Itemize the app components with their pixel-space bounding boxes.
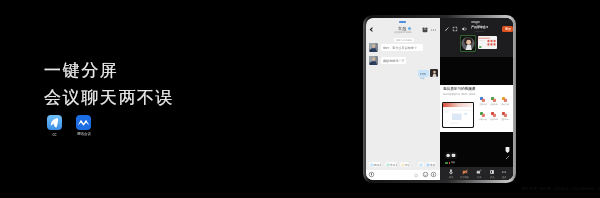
staticText: 已读 [420, 77, 425, 80]
staticText: 产品评审会 ▾ [471, 25, 488, 29]
staticText: 腾讯会议 [77, 132, 91, 136]
button[interactable]: 购买咨询 [369, 162, 381, 167]
staticText: 离开 [505, 27, 511, 31]
button[interactable]: 演示文稿 [500, 97, 509, 105]
button[interactable]: 客服小C为您服务 [394, 38, 414, 42]
button[interactable]: 更多 [431, 28, 436, 32]
button[interactable]: 标注 [505, 155, 510, 160]
button[interactable]: CC [47, 115, 62, 137]
button[interactable]: 返回 [368, 26, 375, 33]
button[interactable]: 腾讯会议 [76, 115, 91, 136]
staticText: CC [52, 132, 57, 137]
staticText: 共享 [477, 176, 482, 179]
button[interactable]: 开启视频 [459, 169, 470, 179]
staticText: 客服 [398, 26, 407, 31]
staticText: 在线客服为您服务 [394, 31, 412, 34]
staticText: 客服小C为您服务 [396, 39, 412, 42]
staticText: 会议聊天两不误 [44, 87, 175, 108]
button[interactable]: 群聊 [422, 27, 428, 33]
staticText: 高品质学习的视频课 [443, 87, 476, 92]
button[interactable]: 点赞 [414, 173, 418, 177]
button[interactable]: 麻烦您稍等一下 [381, 57, 406, 64]
button[interactable]: 共享内容预览 [478, 36, 497, 49]
staticText: 成员 [490, 176, 495, 179]
button[interactable]: 扬声器 [461, 26, 467, 32]
button[interactable]: 售后咨询 [385, 162, 397, 167]
button[interactable]: 更多 [425, 162, 436, 167]
button[interactable]: 您好，有什么可以帮您？ [381, 44, 423, 51]
button[interactable]: 好的 [418, 70, 429, 77]
staticText: 麻烦您稍等一下 [383, 59, 405, 63]
staticText: 开启视频 [460, 176, 469, 179]
button[interactable]: 更多应用 [500, 112, 509, 120]
button[interactable]: 白板 [505, 147, 510, 153]
staticText: 弹幕 [451, 161, 455, 164]
button[interactable]: 表情 [423, 172, 428, 177]
button[interactable]: 更多 [500, 169, 508, 179]
staticText: 投诉 [405, 163, 409, 166]
staticText: 00:32:18 [475, 30, 484, 33]
button[interactable]: 在线问卷 [489, 112, 498, 120]
staticText: 精选优质课程内容 · 随时学 · 随地学 [443, 93, 476, 96]
button[interactable]: 离开 [502, 26, 513, 32]
button[interactable]: 媒体控制 [445, 152, 457, 159]
staticText: 售后咨询 [390, 163, 397, 166]
staticText: 文档协作 [479, 103, 487, 105]
staticText: 静音 [449, 176, 454, 179]
button[interactable]: 更多功能 [431, 172, 436, 177]
staticText: 在线表格 [490, 103, 498, 105]
button[interactable]: 共享 [475, 169, 483, 179]
staticText: 更多 [502, 176, 507, 179]
button[interactable]: 布局 [452, 26, 458, 32]
staticText: 在线问卷 [490, 118, 498, 120]
staticText: 思维导图 [479, 118, 487, 120]
button[interactable]: 静音 [447, 169, 455, 179]
button[interactable] [418, 162, 424, 167]
button[interactable]: 成员 [488, 169, 496, 179]
staticText: 好的 [420, 72, 427, 76]
staticText: 更多 [430, 163, 436, 166]
staticText: 更多应用 [501, 118, 509, 120]
staticText: 演示文稿 [501, 103, 509, 105]
button[interactable]: 投诉 [400, 162, 409, 167]
staticText: 图片来源厂商官网，仅供参考，请以实物为准，画面内容为模拟示意 [522, 187, 600, 192]
button[interactable]: 思维导图 [478, 112, 487, 120]
button[interactable]: 收起 [444, 26, 450, 32]
staticText: 购买咨询 [374, 163, 381, 166]
button[interactable]: 视频画面 [460, 35, 476, 52]
button[interactable]: 文档协作 [478, 97, 487, 105]
button[interactable]: 语音输入 [369, 172, 374, 177]
staticText: 一键分屏 [44, 60, 119, 81]
staticText: 您好，有什么可以帮您？ [383, 46, 418, 50]
button[interactable]: 在线表格 [489, 97, 498, 105]
